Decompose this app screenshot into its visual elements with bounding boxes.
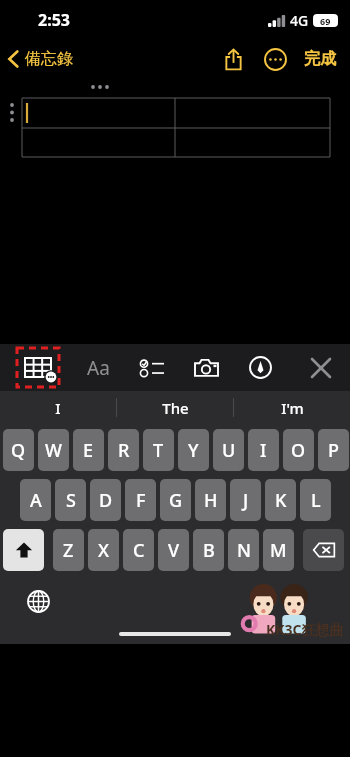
button[interactable]: N xyxy=(228,529,259,571)
staticText: 完成 xyxy=(304,49,336,69)
staticText: Y xyxy=(188,438,199,463)
staticText: H xyxy=(204,488,218,513)
button[interactable]: D xyxy=(90,479,121,521)
staticText: A xyxy=(30,488,42,513)
button[interactable]: V xyxy=(158,529,189,571)
staticText: E xyxy=(83,438,94,463)
staticText: O xyxy=(291,438,306,463)
button[interactable]: S xyxy=(55,479,86,521)
button[interactable]: J xyxy=(230,479,261,521)
button[interactable]: Y xyxy=(178,429,209,471)
button[interactable]: E xyxy=(73,429,104,471)
staticText: 4G xyxy=(290,11,309,30)
staticText: N xyxy=(237,538,251,563)
button[interactable]: U xyxy=(213,429,244,471)
staticText: K xyxy=(275,488,287,513)
staticText: P xyxy=(328,438,339,463)
button[interactable]: I'm xyxy=(234,391,350,424)
button[interactable]: Share xyxy=(216,42,250,76)
staticText: U xyxy=(222,438,236,463)
staticText: T xyxy=(153,438,164,463)
button[interactable]: Checklist xyxy=(130,345,174,390)
button[interactable]: A xyxy=(20,479,51,521)
staticText: The xyxy=(162,398,189,418)
button[interactable]: Z xyxy=(53,529,84,571)
button[interactable]: I xyxy=(0,391,116,424)
button[interactable]: B xyxy=(193,529,224,571)
staticText: Z xyxy=(63,538,74,563)
staticText: W xyxy=(45,438,62,463)
button[interactable]: Markup xyxy=(238,345,282,390)
staticText: X xyxy=(98,538,109,563)
button[interactable]: W xyxy=(38,429,69,471)
button[interactable]: H xyxy=(195,479,226,521)
staticText: V xyxy=(168,538,180,563)
staticText: D xyxy=(99,488,113,513)
staticText: KK3C狂想曲 xyxy=(266,620,344,639)
button[interactable]: X xyxy=(88,529,119,571)
staticText: I'm xyxy=(281,398,304,418)
staticText: B xyxy=(203,538,215,563)
button[interactable]: 備忘錄 xyxy=(0,45,81,73)
staticText: F xyxy=(136,488,146,513)
staticText: Q xyxy=(11,438,26,463)
button[interactable]: P xyxy=(318,429,349,471)
button[interactable]: L xyxy=(300,479,331,521)
button[interactable]: M xyxy=(263,529,294,571)
button[interactable]: K xyxy=(265,479,296,521)
staticText: M xyxy=(270,538,287,563)
staticText: Aa xyxy=(87,355,110,381)
staticText: G xyxy=(169,488,183,513)
staticText: 2:53 xyxy=(38,9,70,31)
staticText: L xyxy=(311,488,321,513)
button[interactable]: The xyxy=(117,391,233,424)
staticText: 69 xyxy=(320,15,331,27)
button[interactable] xyxy=(303,529,344,571)
staticText: R xyxy=(118,438,130,463)
button[interactable] xyxy=(3,529,44,571)
button[interactable]: F xyxy=(125,479,156,521)
button[interactable]: 完成 xyxy=(298,45,342,73)
button[interactable]: G xyxy=(160,479,191,521)
staticText: I xyxy=(260,438,267,463)
staticText: C xyxy=(133,538,145,563)
staticText: S xyxy=(66,488,76,513)
staticText: 備忘錄 xyxy=(25,49,73,69)
button[interactable]: More xyxy=(258,42,292,76)
button[interactable]: Close xyxy=(298,345,344,390)
button[interactable]: R xyxy=(108,429,139,471)
button[interactable]: Language xyxy=(22,585,54,617)
staticText: I xyxy=(55,398,61,418)
button[interactable]: Table xyxy=(14,345,62,390)
staticText: J xyxy=(243,488,249,513)
button[interactable]: I xyxy=(248,429,279,471)
button[interactable]: O xyxy=(283,429,314,471)
button[interactable]: Aa xyxy=(76,345,120,390)
button[interactable]: Q xyxy=(3,429,34,471)
button[interactable]: C xyxy=(123,529,154,571)
button[interactable]: T xyxy=(143,429,174,471)
button[interactable]: Camera xyxy=(184,345,228,390)
